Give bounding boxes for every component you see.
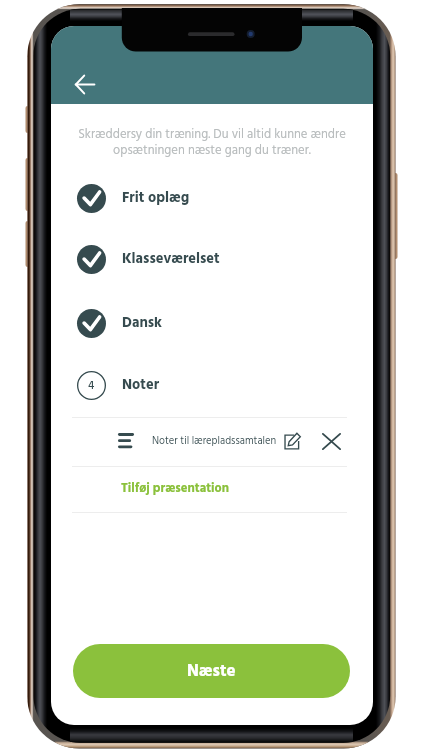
button[interactable]: 4 — [51, 368, 373, 402]
staticText: 4 — [88, 377, 95, 395]
staticText: Frit oplæg — [122, 187, 190, 210]
button[interactable]: Remove — [316, 427, 347, 455]
staticText: Noter til lærepladssamtalen — [152, 433, 277, 450]
staticText: Klasseværelset — [122, 248, 220, 271]
button[interactable]: Dansk — [51, 306, 373, 340]
staticText: Næste — [187, 658, 236, 685]
button[interactable]: Frit oplæg — [51, 181, 373, 215]
button[interactable]: Klasseværelset — [51, 242, 373, 276]
staticText: Noter — [122, 374, 160, 397]
button[interactable]: Næste — [73, 644, 350, 698]
button[interactable]: Tilføj præsentation — [72, 473, 347, 505]
button[interactable] — [72, 425, 347, 457]
staticText: Skræddersy din træning. Du vil altid kun… — [61, 125, 363, 161]
button[interactable]: Edit — [278, 427, 307, 455]
staticText: Dansk — [122, 312, 163, 335]
button[interactable]: Back — [64, 67, 106, 101]
staticText: Tilføj præsentation — [121, 479, 230, 499]
